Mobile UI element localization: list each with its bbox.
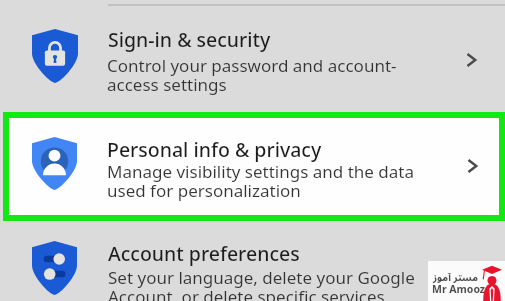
staticText: مستر آموز (433, 267, 479, 288)
staticText: Account preferences (108, 240, 300, 267)
staticText: Personal info & privacy (107, 136, 322, 163)
other: Open (459, 48, 483, 72)
button[interactable]: Personal info & privacy (3, 112, 505, 221)
staticText: Set your language, delete your Google Ac… (108, 266, 415, 301)
button[interactable]: Sign-in & security (0, 6, 505, 111)
staticText: Mr Amooz (432, 282, 486, 296)
other: Open (460, 154, 484, 178)
button[interactable]: Account preferences (0, 222, 505, 301)
staticText: Control your password and account- acces… (107, 54, 397, 96)
staticText: Sign-in & security (108, 26, 271, 53)
staticText: Manage visibility settings and the data … (107, 160, 415, 202)
